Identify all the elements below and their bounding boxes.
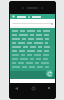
button[interactable]: Back	[14, 86, 18, 90]
button[interactable]: Translate	[46, 70, 53, 77]
button[interactable]: Menu	[12, 15, 15, 18]
button[interactable]: Recents	[47, 86, 51, 90]
other: Swap languages	[28, 16, 30, 18]
button[interactable]: Clear	[10, 19, 55, 26]
button[interactable]: Clear	[51, 23, 53, 25]
button[interactable]: Home	[31, 86, 35, 90]
button[interactable]: Swap languages	[17, 16, 53, 18]
